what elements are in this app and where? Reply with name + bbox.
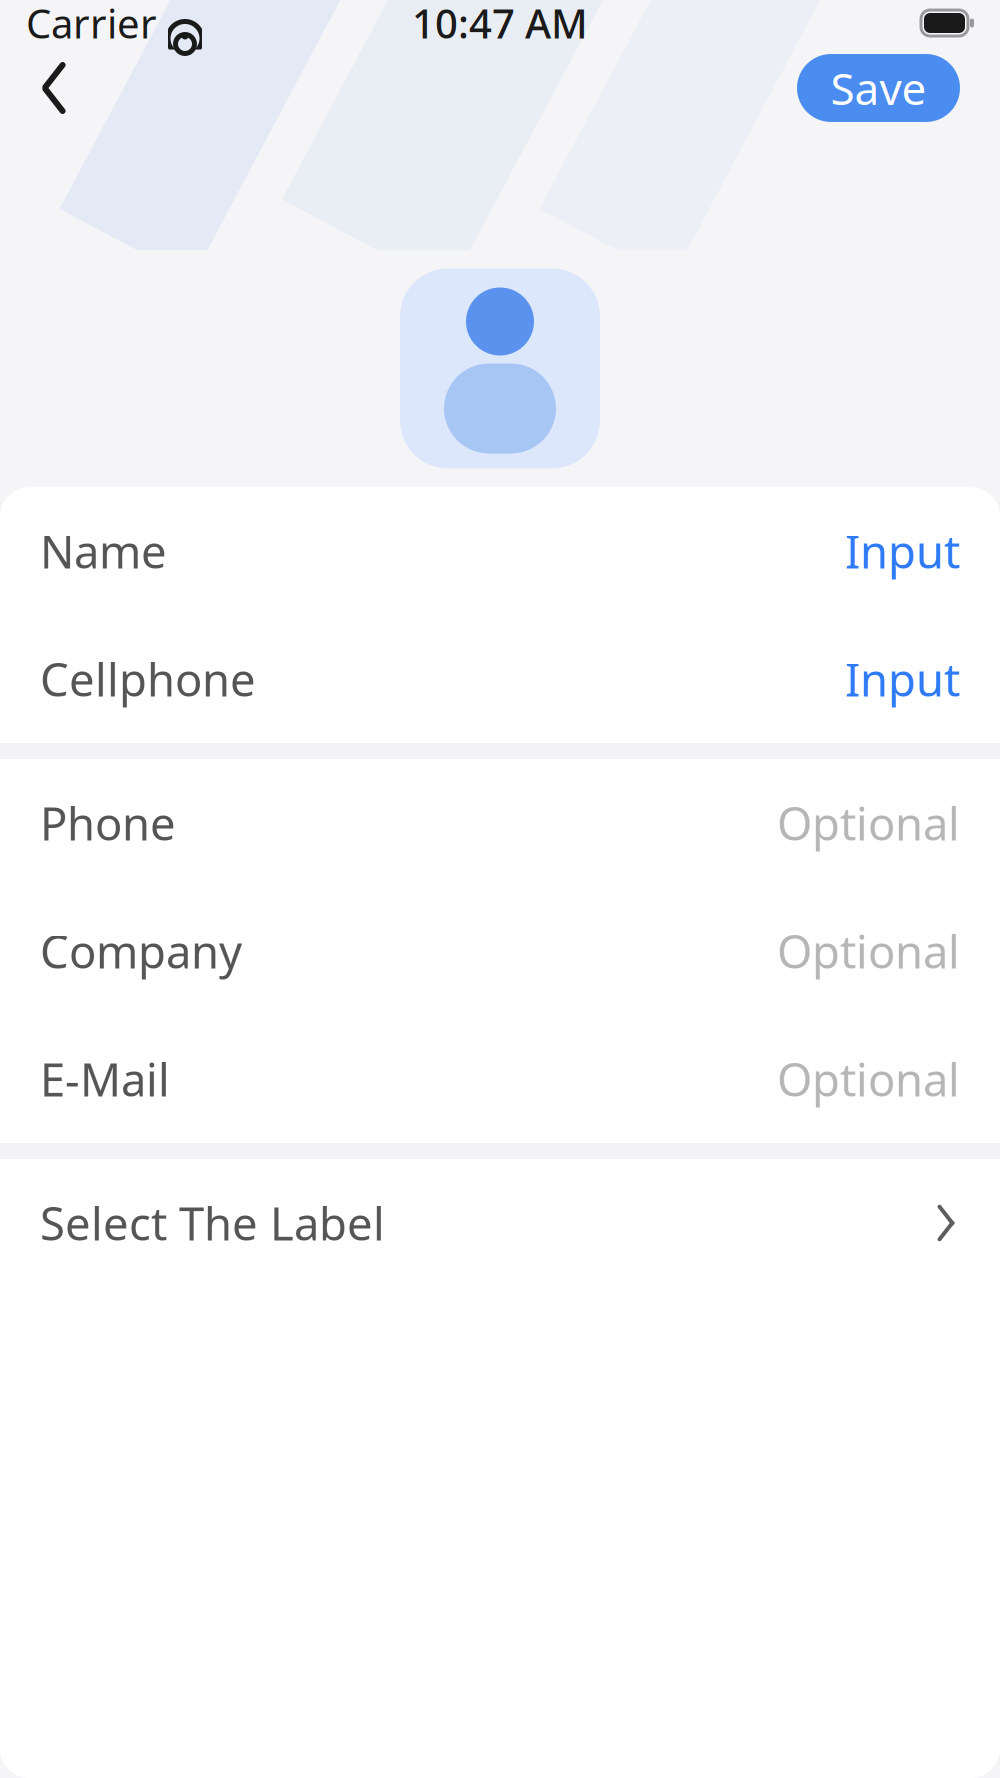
staticText: Input [845, 649, 960, 709]
staticText: Optional [777, 793, 960, 853]
button[interactable]: E-Mail [0, 1015, 1000, 1143]
staticText: E-Mail [40, 1049, 170, 1109]
button[interactable]: Cellphone [0, 615, 1000, 743]
staticText: Optional [777, 1049, 960, 1109]
staticText: Input [845, 521, 960, 581]
staticText: Select The Label [40, 1193, 385, 1253]
staticText: Optional [777, 921, 960, 981]
staticText: Name [40, 521, 167, 581]
staticText: Carrier [26, 0, 157, 49]
staticText: Save [830, 59, 926, 117]
staticText: Phone [40, 793, 176, 853]
button[interactable]: Name [0, 487, 1000, 615]
staticText: Cellphone [40, 649, 256, 709]
button[interactable]: Select The Label [0, 1159, 1000, 1287]
button[interactable]: Save [797, 54, 960, 122]
staticText: 10:47 AM [412, 0, 588, 49]
button[interactable]: Company [0, 887, 1000, 1015]
button[interactable]: Back [18, 52, 90, 124]
button[interactable]: Phone [0, 759, 1000, 887]
staticText: Company [40, 921, 242, 981]
